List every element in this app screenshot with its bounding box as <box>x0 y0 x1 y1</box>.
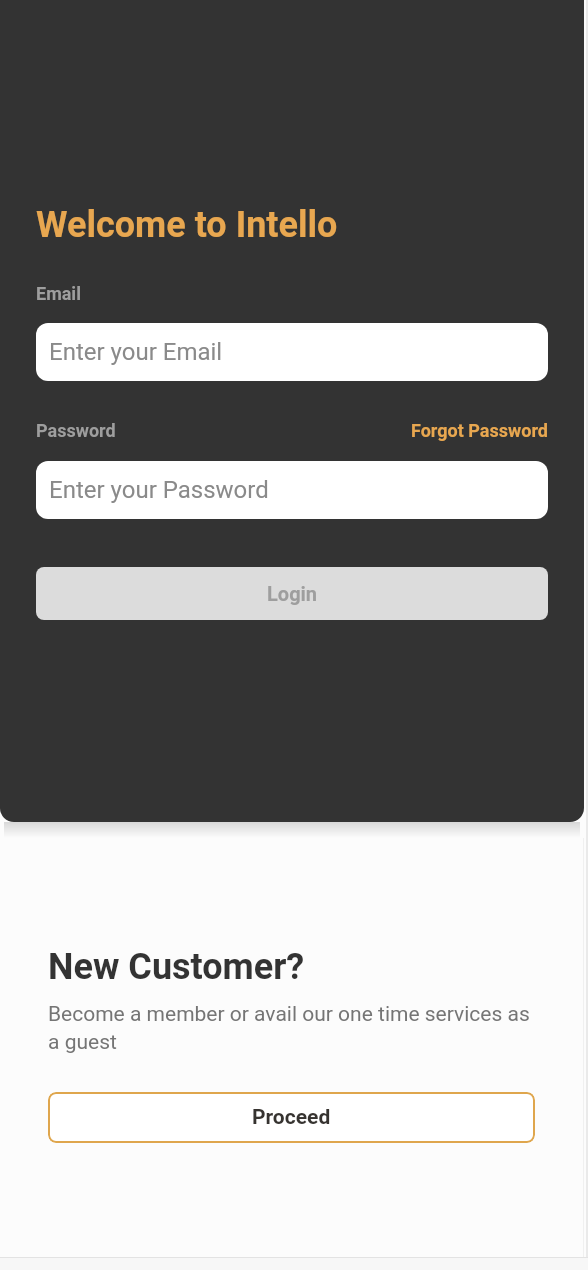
staticText: Email <box>36 283 81 304</box>
staticText: Proceed <box>252 1105 331 1130</box>
staticText: Enter your Email <box>49 338 223 366</box>
staticText: Password <box>36 420 116 441</box>
button[interactable]: Enter your Password <box>36 461 548 519</box>
staticText: Welcome to Intello <box>36 204 338 246</box>
staticText: Enter your Password <box>49 476 269 504</box>
button[interactable]: Proceed <box>48 1092 535 1143</box>
staticText: New Customer? <box>48 946 305 988</box>
button[interactable]: Enter your Email <box>36 323 548 381</box>
staticText: Login <box>267 582 318 605</box>
button[interactable]: Forgot Password <box>411 420 548 441</box>
staticText: Become a member or avail our one time se… <box>48 1002 535 1054</box>
button[interactable]: Login <box>36 567 548 620</box>
